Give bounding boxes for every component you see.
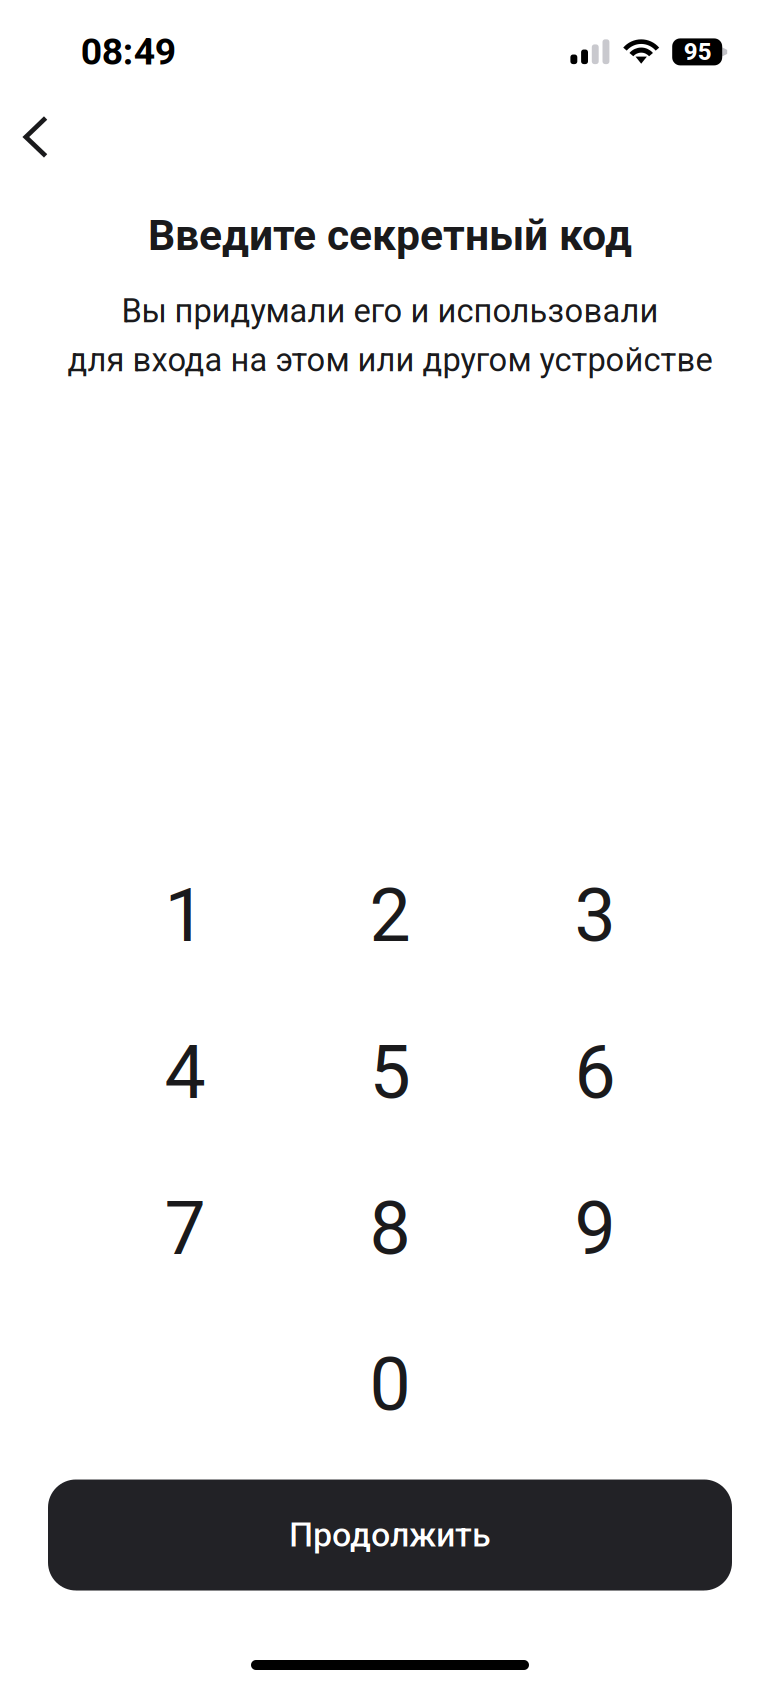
staticText: для входа на этом или другом устройстве: [67, 341, 712, 379]
button[interactable]: 1: [85, 842, 285, 990]
button[interactable]: 0: [290, 1311, 490, 1459]
button[interactable]: 2: [290, 842, 490, 990]
button[interactable]: 3: [495, 842, 695, 990]
staticText: 9: [574, 1186, 615, 1272]
button[interactable]: Back: [0, 103, 88, 171]
button[interactable]: 5: [290, 999, 490, 1147]
staticText: Вы придумали его и использовали: [121, 292, 658, 330]
staticText: 4: [164, 1030, 205, 1116]
staticText: 3: [574, 873, 615, 959]
staticText: Введите секретный код: [148, 210, 632, 260]
button[interactable]: 8: [290, 1155, 490, 1303]
staticText: 08:49: [81, 30, 176, 74]
staticText: Продолжить: [289, 1515, 491, 1555]
staticText: 6: [574, 1030, 615, 1116]
button[interactable]: 9: [495, 1155, 695, 1303]
button[interactable]: 7: [85, 1155, 285, 1303]
staticText: 95: [684, 38, 712, 66]
staticText: 5: [369, 1030, 410, 1116]
staticText: 0: [369, 1342, 410, 1428]
button[interactable]: 4: [85, 999, 285, 1147]
staticText: 2: [369, 873, 410, 959]
staticText: 1: [164, 873, 205, 959]
button[interactable]: 6: [495, 999, 695, 1147]
staticText: 7: [164, 1186, 205, 1272]
staticText: 8: [369, 1186, 410, 1272]
button[interactable]: Продолжить: [48, 1479, 732, 1590]
